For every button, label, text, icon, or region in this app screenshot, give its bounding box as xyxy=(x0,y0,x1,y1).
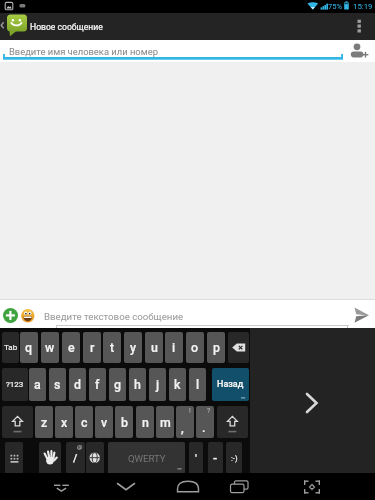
button[interactable] xyxy=(86,442,104,474)
button[interactable] xyxy=(226,476,254,498)
button[interactable]: e xyxy=(62,332,80,363)
button[interactable] xyxy=(112,476,140,498)
staticText: d xyxy=(74,377,81,392)
button[interactable]: c xyxy=(75,406,93,438)
button[interactable]: Назад xyxy=(212,368,249,401)
button[interactable]: u xyxy=(145,332,163,363)
button[interactable]: r xyxy=(83,332,101,363)
staticText: o xyxy=(191,340,199,355)
button[interactable] xyxy=(348,13,375,40)
button[interactable]: Новое сообщение xyxy=(0,13,375,40)
button[interactable]: / xyxy=(66,442,85,474)
staticText: ?123 xyxy=(6,380,24,389)
button[interactable]: t xyxy=(103,332,121,363)
staticText: ! xyxy=(189,407,191,415)
staticText: Назад xyxy=(217,379,244,390)
staticText: r xyxy=(90,340,95,355)
button[interactable] xyxy=(217,406,248,438)
staticText: Введите имя человека или номер xyxy=(9,46,158,57)
button[interactable]: , xyxy=(176,406,194,438)
button[interactable]: b xyxy=(115,406,133,438)
button[interactable]: p xyxy=(207,332,225,363)
button[interactable] xyxy=(2,406,33,438)
staticText: j xyxy=(156,377,160,392)
staticText: 75% xyxy=(328,2,343,11)
button[interactable] xyxy=(300,477,324,497)
staticText: m xyxy=(160,415,171,430)
button[interactable] xyxy=(0,300,375,328)
button[interactable]: i xyxy=(165,332,183,363)
button[interactable]: Tab xyxy=(2,332,19,363)
staticText: - xyxy=(213,451,218,466)
button[interactable] xyxy=(250,328,375,473)
staticText: QWERTY xyxy=(128,453,166,464)
staticText: :-) xyxy=(231,454,238,463)
button[interactable]: Введите имя человека или номер xyxy=(0,40,375,62)
staticText: , xyxy=(181,420,184,435)
button[interactable]: w xyxy=(41,332,59,363)
button[interactable]: - xyxy=(208,442,223,474)
staticText: a xyxy=(34,377,41,392)
button[interactable] xyxy=(5,442,23,474)
button[interactable]: j xyxy=(149,368,166,401)
button[interactable]: h xyxy=(129,368,146,401)
button[interactable]: a xyxy=(29,368,46,401)
staticText: v xyxy=(101,415,108,430)
staticText: ? xyxy=(207,407,211,415)
button[interactable]: m xyxy=(156,406,174,438)
button[interactable]: d xyxy=(69,368,86,401)
staticText: k xyxy=(174,377,181,392)
staticText: @ xyxy=(77,443,83,450)
button[interactable]: s xyxy=(49,368,66,401)
button[interactable]: x xyxy=(55,406,73,438)
staticText: x xyxy=(61,415,68,430)
button[interactable]: ?123 xyxy=(2,368,28,401)
staticText: i xyxy=(172,340,176,355)
staticText: b xyxy=(121,415,128,430)
button[interactable]: o xyxy=(186,332,204,363)
button[interactable]: z xyxy=(35,406,53,438)
staticText: 15:19 xyxy=(353,2,373,11)
button[interactable] xyxy=(344,40,372,60)
staticText: g xyxy=(114,377,122,392)
button[interactable]: l xyxy=(189,368,206,401)
staticText: ' xyxy=(195,452,197,465)
button[interactable]: n xyxy=(136,406,154,438)
staticText: q xyxy=(25,340,33,355)
button[interactable]: QWERTY xyxy=(108,442,185,474)
staticText: Введите текстовое сообщение xyxy=(44,311,184,322)
button[interactable]: v xyxy=(95,406,113,438)
button[interactable]: f xyxy=(89,368,106,401)
staticText: p xyxy=(213,340,220,355)
button[interactable] xyxy=(21,309,35,323)
staticText: c xyxy=(81,415,88,430)
button[interactable]: g xyxy=(109,368,126,401)
button[interactable]: y xyxy=(124,332,142,363)
staticText: z xyxy=(41,415,48,430)
staticText: h xyxy=(134,377,141,392)
staticText: y xyxy=(130,340,137,355)
staticText: s xyxy=(54,377,61,392)
staticText: . xyxy=(202,420,206,435)
button[interactable]: q xyxy=(20,332,38,363)
staticText: l xyxy=(196,377,200,392)
staticText: n xyxy=(142,415,149,430)
button[interactable]: k xyxy=(169,368,186,401)
button[interactable]: ' xyxy=(189,442,203,474)
button[interactable] xyxy=(48,476,76,498)
staticText: Tab xyxy=(4,343,18,352)
staticText: / xyxy=(73,452,78,465)
button[interactable] xyxy=(348,302,375,328)
button[interactable] xyxy=(228,332,249,363)
button[interactable]: :-) xyxy=(226,442,242,474)
staticText: u xyxy=(151,340,158,355)
button[interactable] xyxy=(39,442,61,474)
button[interactable]: . xyxy=(196,406,214,438)
staticText: w xyxy=(45,340,55,355)
staticText: Новое сообщение xyxy=(30,22,103,32)
staticText: f xyxy=(95,377,100,392)
staticText: t xyxy=(110,340,115,355)
button[interactable] xyxy=(3,308,18,323)
staticText: e xyxy=(68,340,75,355)
button[interactable] xyxy=(174,476,202,498)
